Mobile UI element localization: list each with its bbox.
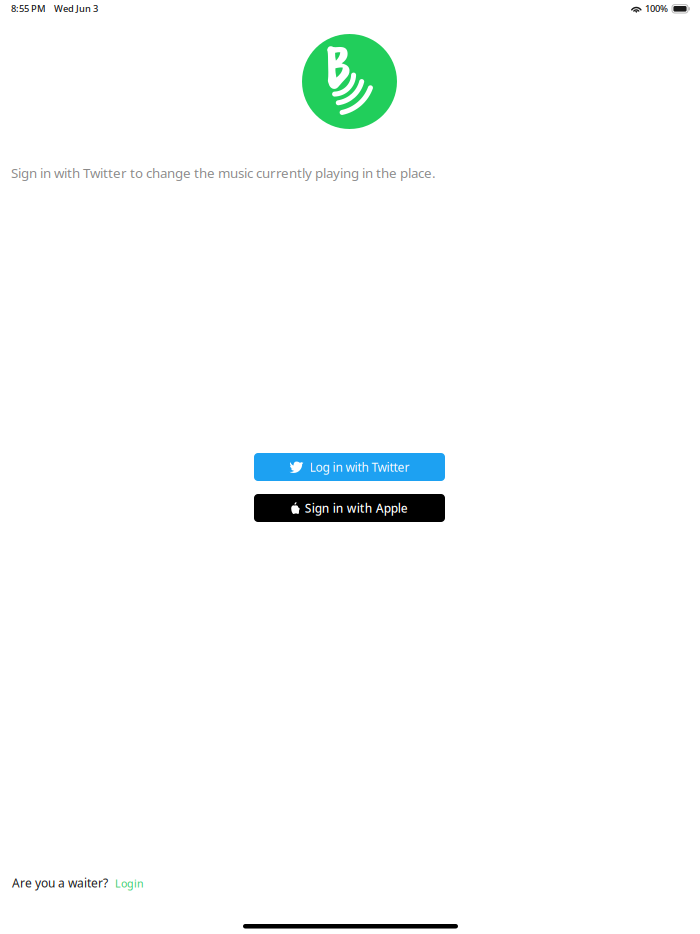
staticText: 100% <box>645 2 668 15</box>
staticText: Log in with Twitter <box>309 459 409 475</box>
staticText: Wed Jun 3 <box>54 2 98 15</box>
button[interactable]: Login <box>115 876 144 891</box>
staticText: 8:55 PM <box>11 2 46 15</box>
staticText: Login <box>115 876 144 891</box>
button[interactable]: Sign in with Apple <box>254 494 445 522</box>
staticText: Are you a waiter? <box>12 875 108 891</box>
staticText: Sign in with Apple <box>305 500 408 516</box>
staticText: Sign in with Twitter to change the music… <box>11 164 436 182</box>
button[interactable]: Log in with Twitter <box>254 453 445 481</box>
